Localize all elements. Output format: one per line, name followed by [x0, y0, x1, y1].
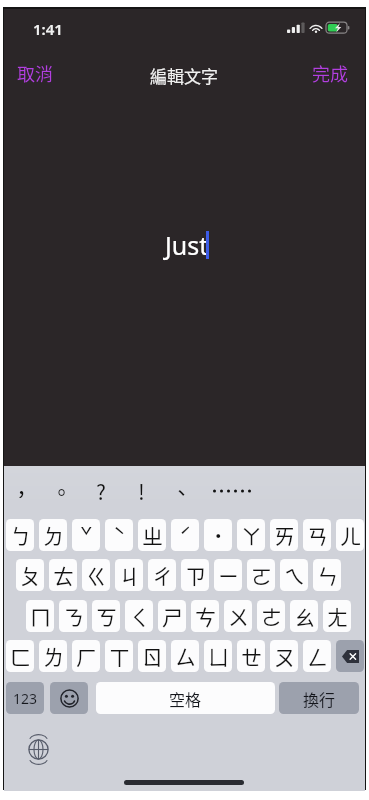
button[interactable]: ㄆ	[16, 559, 44, 591]
button[interactable]: 完成	[300, 53, 360, 93]
staticText: ㄡ	[274, 641, 295, 671]
staticText: ㄦ	[340, 520, 361, 550]
staticText: ㄝ	[241, 641, 262, 671]
staticText: 。	[51, 476, 72, 506]
staticText: ㄓ	[142, 520, 163, 550]
button[interactable]: ㄍ	[82, 559, 110, 591]
button[interactable]: ㄜ	[257, 600, 285, 632]
button[interactable]: ㄚ	[237, 519, 265, 551]
button[interactable]: ㄧ	[214, 559, 242, 591]
button[interactable]	[207, 475, 257, 507]
button[interactable]: ㄋ	[59, 600, 87, 632]
staticText: ㄩ	[208, 641, 229, 671]
button[interactable]: ㄟ	[280, 559, 308, 591]
staticText: ㄢ	[307, 520, 328, 550]
button[interactable]: ㄩ	[204, 640, 232, 672]
staticText: ,	[18, 466, 25, 498]
staticText: ㄒ	[109, 641, 130, 671]
button[interactable]: ㄣ	[313, 559, 341, 591]
button[interactable]: ㄨ	[224, 600, 252, 632]
button[interactable]: ㄏ	[72, 640, 100, 672]
button[interactable]: ㄘ	[191, 600, 219, 632]
staticText: ㄜ	[261, 601, 282, 631]
button[interactable]: ㄡ	[270, 640, 298, 672]
button[interactable]: !	[124, 475, 158, 507]
staticText: ㄔ	[152, 560, 173, 590]
staticText: 、	[171, 476, 192, 506]
button[interactable]: ㄥ	[303, 640, 331, 672]
staticText: ㄅ	[10, 520, 31, 550]
staticText: ˇ	[80, 520, 93, 550]
button[interactable]: 、	[164, 475, 198, 507]
staticText: 1:41	[33, 19, 63, 39]
staticText: 123	[13, 689, 38, 708]
staticText: 空格	[169, 687, 202, 710]
button[interactable]: Switch keyboard	[25, 736, 51, 762]
button[interactable]: 空格	[96, 682, 275, 714]
button[interactable]: ㄝ	[237, 640, 265, 672]
button[interactable]: ㄉ	[39, 519, 67, 551]
button[interactable]: ㄔ	[148, 559, 176, 591]
button[interactable]: 123	[6, 682, 44, 714]
button[interactable]: ㄈ	[6, 640, 34, 672]
staticText: !	[138, 476, 145, 506]
button[interactable]: ㄅ	[6, 519, 34, 551]
staticText: ㄋ	[63, 601, 84, 631]
button[interactable]: ㄗ	[181, 559, 209, 591]
button[interactable]: ˙	[204, 519, 232, 551]
button[interactable]: ㄖ	[138, 640, 166, 672]
staticText: ˋ	[113, 520, 126, 550]
button[interactable]: ,	[4, 466, 38, 498]
staticText: 換行	[303, 687, 336, 710]
button[interactable]: ˊ	[171, 519, 199, 551]
staticText: ㄉ	[43, 520, 64, 550]
staticText: ?	[96, 476, 106, 506]
staticText: Just	[165, 228, 209, 262]
button[interactable]: 。	[44, 475, 78, 507]
staticText: ㄙ	[175, 641, 196, 671]
staticText: ㄞ	[274, 520, 295, 550]
staticText: ㄍ	[86, 560, 107, 590]
button[interactable]: ㄓ	[138, 519, 166, 551]
staticText: ㄧ	[218, 560, 239, 590]
staticText: 編輯文字	[150, 63, 218, 88]
staticText: ㄨ	[228, 601, 249, 631]
button[interactable]: ㄞ	[270, 519, 298, 551]
staticText: ㄕ	[162, 601, 183, 631]
button[interactable]: Emoji	[50, 682, 88, 714]
staticText: ㄥ	[307, 641, 328, 671]
button[interactable]: ㄇ	[26, 600, 54, 632]
button[interactable]: ㄌ	[39, 640, 67, 672]
button[interactable]: ˋ	[105, 519, 133, 551]
staticText: ㄏ	[76, 641, 97, 671]
staticText: ㄌ	[43, 641, 64, 671]
button[interactable]: ?	[84, 475, 118, 507]
staticText: ㄎ	[96, 601, 117, 631]
staticText: 完成	[312, 60, 348, 86]
staticText: ㄗ	[185, 560, 206, 590]
button[interactable]: ㄤ	[323, 600, 351, 632]
button[interactable]: ㄐ	[115, 559, 143, 591]
staticText: ㄘ	[195, 601, 216, 631]
button[interactable]: 取消	[5, 53, 65, 93]
button[interactable]: ㄊ	[49, 559, 77, 591]
button[interactable]: 換行	[279, 682, 359, 714]
staticText: ˊ	[179, 520, 192, 550]
staticText: ˙	[213, 520, 224, 550]
button[interactable]: ㄛ	[247, 559, 275, 591]
button[interactable]: ㄎ	[92, 600, 120, 632]
staticText: ㄖ	[142, 641, 163, 671]
staticText: ㄚ	[241, 520, 262, 550]
button[interactable]: ㄙ	[171, 640, 199, 672]
staticText: ㄆ	[20, 560, 41, 590]
button[interactable]: ㄠ	[290, 600, 318, 632]
staticText: ㄑ	[129, 601, 150, 631]
button[interactable]: Backspace	[336, 640, 364, 672]
button[interactable]: ㄦ	[336, 519, 364, 551]
staticText: 取消	[17, 60, 53, 86]
button[interactable]: ˇ	[72, 519, 100, 551]
button[interactable]: ㄕ	[158, 600, 186, 632]
button[interactable]: ㄢ	[303, 519, 331, 551]
button[interactable]: ㄑ	[125, 600, 153, 632]
button[interactable]: ㄒ	[105, 640, 133, 672]
